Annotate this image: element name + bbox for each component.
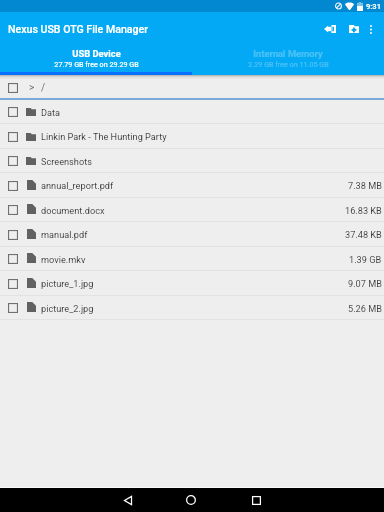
button[interactable]: movie.mkv: [0, 247, 384, 271]
staticText: 1.39 GB: [349, 254, 382, 265]
button[interactable]: Recent apps: [232, 488, 280, 512]
staticText: 7.38 MB: [348, 180, 382, 191]
staticText: annual_report.pdf: [41, 180, 114, 191]
staticText: picture_2.jpg: [41, 303, 94, 314]
button[interactable]: Unmount USB device: [313, 16, 346, 42]
staticText: USB Device: [72, 48, 121, 59]
staticText: 37.48 KB: [345, 229, 382, 240]
staticText: /: [41, 82, 46, 94]
button[interactable]: Linkin Park - The Hunting Party: [0, 124, 384, 149]
staticText: Linkin Park - The Hunting Party: [41, 131, 167, 142]
button[interactable]: Screenshots: [0, 149, 384, 173]
button[interactable]: manual.pdf: [0, 222, 384, 247]
button[interactable]: Internal Memory: [192, 38, 384, 72]
staticText: 9:31: [366, 2, 381, 11]
button[interactable]: picture_2.jpg: [0, 296, 384, 320]
staticText: Nexus USB OTG File Manager: [8, 23, 148, 35]
button[interactable]: >: [0, 75, 384, 100]
button[interactable]: document.docx: [0, 198, 384, 222]
staticText: movie.mkv: [41, 254, 86, 265]
button[interactable]: USB Device: [0, 38, 192, 72]
button[interactable]: Create new folder: [346, 16, 361, 42]
staticText: >: [29, 82, 35, 94]
staticText: 16.83 KB: [345, 205, 382, 216]
staticText: document.docx: [41, 205, 105, 216]
staticText: manual.pdf: [41, 229, 88, 240]
button[interactable]: More options: [361, 16, 381, 42]
staticText: 9.07 MB: [348, 278, 382, 289]
staticText: 5.26 MB: [348, 303, 382, 314]
staticText: Data: [41, 107, 61, 118]
staticText: 2.29 GB free on 11.05 GB: [248, 60, 329, 68]
staticText: picture_1.jpg: [41, 278, 94, 289]
staticText: Internal Memory: [253, 48, 323, 59]
staticText: Screenshots: [41, 156, 92, 167]
button[interactable]: picture_1.jpg: [0, 271, 384, 296]
button[interactable]: Home: [167, 488, 215, 512]
button[interactable]: annual_report.pdf: [0, 173, 384, 198]
button[interactable]: Back: [104, 488, 152, 512]
staticText: 27.79 GB free on 29.29 GB: [54, 60, 139, 68]
button[interactable]: Data: [0, 100, 384, 124]
